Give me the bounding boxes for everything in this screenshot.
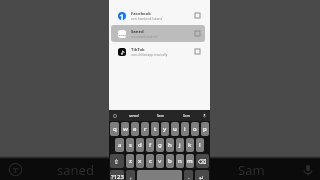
staticText: j xyxy=(179,141,181,149)
staticText: r xyxy=(144,125,147,133)
button[interactable]: j xyxy=(176,138,184,152)
staticText: ⇧ xyxy=(114,158,120,165)
button[interactable]: Clipboard xyxy=(0,159,31,180)
staticText: com.facebook.katana xyxy=(131,17,163,21)
button[interactable]: z xyxy=(126,154,134,168)
button[interactable]: h xyxy=(166,138,174,152)
staticText: a xyxy=(118,141,122,149)
staticText: d xyxy=(138,141,142,149)
button[interactable]: y xyxy=(161,122,169,136)
button[interactable]: Select TikTok xyxy=(193,47,202,56)
button[interactable]: saned xyxy=(111,25,205,42)
button[interactable]: Voice input xyxy=(295,159,320,180)
staticText: t xyxy=(154,125,157,133)
button[interactable]: n xyxy=(176,154,184,168)
staticText: w xyxy=(123,125,128,133)
staticText: f xyxy=(149,141,152,149)
button[interactable]: saned xyxy=(120,110,147,121)
staticText: g xyxy=(158,141,162,149)
staticText: z xyxy=(129,157,132,165)
button[interactable]: Select Facebook xyxy=(193,11,202,20)
staticText: h xyxy=(168,141,172,149)
staticText: c xyxy=(149,157,152,165)
staticText: com.zhiliaoapp.musically xyxy=(131,53,168,57)
staticText: Saned xyxy=(131,29,144,35)
staticText: s xyxy=(129,141,132,149)
button[interactable]: m xyxy=(186,154,194,168)
button[interactable]: f xyxy=(146,138,154,152)
staticText: Sam xyxy=(150,161,177,179)
staticText: Facebook xyxy=(131,11,151,17)
button[interactable]: ↵ xyxy=(195,170,209,180)
button[interactable]: , xyxy=(126,170,135,180)
button[interactable]: k xyxy=(186,138,194,152)
button[interactable]: c xyxy=(146,154,154,168)
button[interactable]: ⇧ xyxy=(110,154,124,168)
button[interactable]: b xyxy=(166,154,174,168)
staticText: e xyxy=(133,125,137,133)
button[interactable]: Voice input xyxy=(199,110,210,121)
staticText: ?123 xyxy=(111,173,124,180)
staticText: saned xyxy=(119,33,126,36)
button[interactable]: d xyxy=(136,138,144,152)
button[interactable]: Clipboard xyxy=(109,110,120,121)
button[interactable]: e xyxy=(131,122,139,136)
button[interactable]: i xyxy=(181,122,189,136)
staticText: v xyxy=(158,157,162,165)
button[interactable]: w xyxy=(121,122,129,136)
staticText: Sam xyxy=(238,161,265,179)
button[interactable]: g xyxy=(156,138,164,152)
staticText: x xyxy=(138,157,142,165)
staticText: saned xyxy=(57,161,94,179)
button[interactable]: Facebook xyxy=(111,7,205,24)
button[interactable]: a xyxy=(115,138,124,152)
staticText: y xyxy=(163,125,167,133)
button[interactable]: u xyxy=(171,122,179,136)
button[interactable]: p xyxy=(201,122,209,136)
button[interactable]: TikTok xyxy=(111,43,205,60)
button[interactable]: Sam xyxy=(119,159,207,180)
button[interactable]: r xyxy=(141,122,149,136)
button[interactable] xyxy=(137,170,182,180)
staticText: l xyxy=(199,141,201,149)
staticText: ↵ xyxy=(199,174,205,180)
button[interactable]: saned xyxy=(31,159,119,180)
staticText: n xyxy=(178,157,182,165)
button[interactable]: ?123 xyxy=(110,170,124,180)
staticText: b xyxy=(168,157,172,165)
button[interactable]: ⌫ xyxy=(196,154,209,168)
staticText: i xyxy=(184,125,186,133)
button[interactable]: s xyxy=(126,138,134,152)
staticText: saned xyxy=(129,113,139,118)
button[interactable]: . xyxy=(184,170,193,180)
button[interactable]: Sam xyxy=(173,110,199,121)
staticText: . xyxy=(188,173,190,180)
staticText: , xyxy=(130,173,132,180)
button[interactable]: l xyxy=(196,138,204,152)
staticText: k xyxy=(188,141,192,149)
button[interactable]: x xyxy=(136,154,144,168)
button[interactable]: v xyxy=(156,154,164,168)
staticText: me.saned.android xyxy=(131,35,158,39)
button[interactable]: Sam xyxy=(147,110,173,121)
staticText: ⌫ xyxy=(198,158,207,165)
staticText: Sam xyxy=(157,113,164,118)
staticText: m xyxy=(187,157,193,165)
button[interactable]: q xyxy=(110,122,119,136)
staticText: p xyxy=(203,125,207,133)
staticText: u xyxy=(173,125,177,133)
button[interactable]: o xyxy=(191,122,199,136)
button[interactable]: Select Saned xyxy=(193,29,202,38)
button[interactable]: t xyxy=(151,122,159,136)
staticText: Sam xyxy=(183,113,190,118)
staticText: q xyxy=(113,125,117,133)
button[interactable]: Sam xyxy=(207,159,295,180)
staticText: o xyxy=(193,125,197,133)
staticText: TikTok xyxy=(131,47,145,53)
